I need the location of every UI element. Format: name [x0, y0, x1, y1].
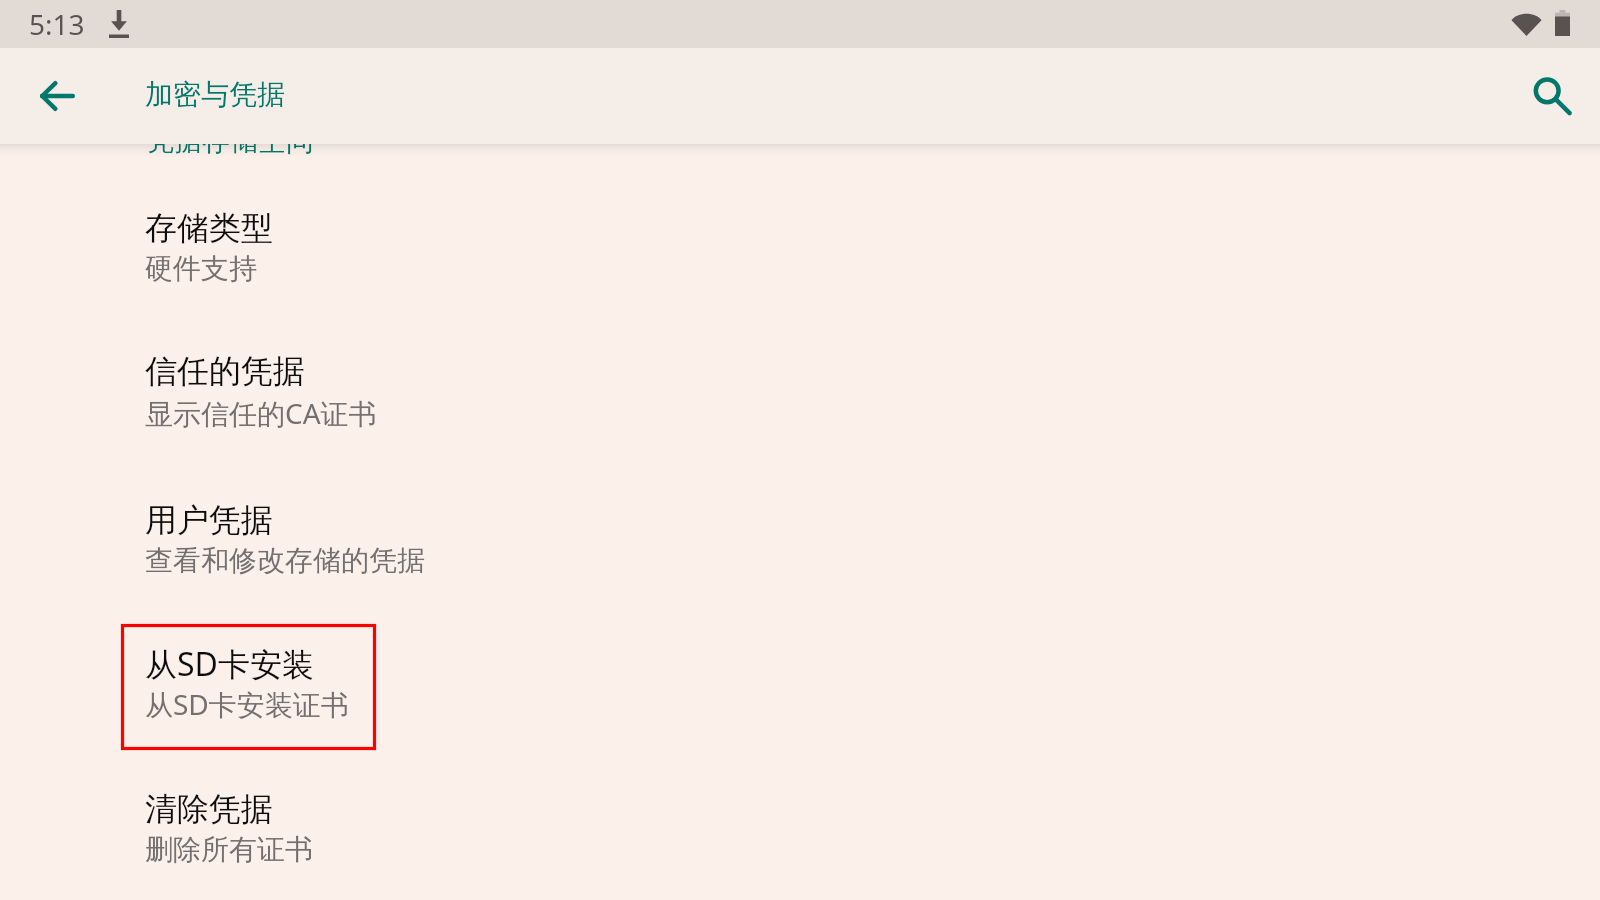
button[interactable]: 从SD卡安装 — [0, 617, 1600, 764]
staticText: 凭据存储空间 — [146, 123, 314, 158]
staticText: 5:13 — [29, 5, 85, 43]
staticText: 用户凭据 — [145, 500, 273, 540]
button[interactable]: 信任的凭据 — [0, 326, 1600, 475]
button[interactable]: Search — [1515, 64, 1579, 128]
staticText: 从SD卡安装 — [145, 642, 314, 686]
staticText: 信任的凭据 — [145, 351, 305, 391]
staticText: 从SD卡安装证书 — [145, 685, 349, 723]
staticText: 删除所有证书 — [145, 832, 313, 867]
staticText: 清除凭据 — [145, 789, 273, 829]
staticText: 加密与凭据 — [145, 77, 285, 112]
staticText: 查看和修改存储的凭据 — [145, 543, 425, 578]
staticText: 硬件支持 — [145, 251, 257, 286]
staticText: 存储类型 — [145, 208, 273, 248]
button[interactable]: 存储类型 — [0, 183, 1600, 326]
button[interactable]: 清除凭据 — [0, 764, 1600, 900]
button[interactable]: 用户凭据 — [0, 475, 1600, 617]
button[interactable]: Back — [25, 64, 89, 128]
staticText: 显示信任的CA证书 — [145, 394, 377, 432]
